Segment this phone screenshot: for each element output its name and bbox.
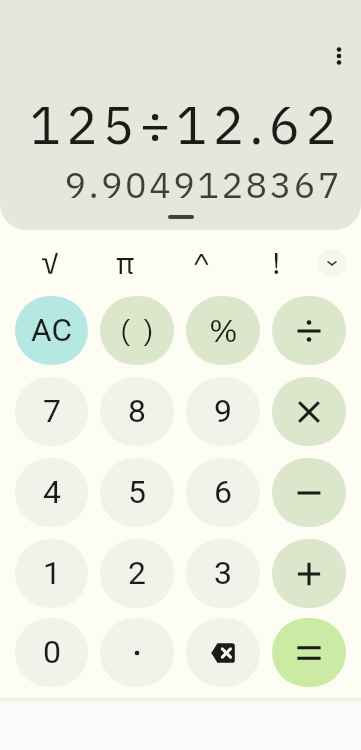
button[interactable]: Backspace: [186, 618, 260, 687]
staticText: ( ): [120, 312, 154, 350]
staticText: AC: [31, 312, 72, 349]
staticText: 9: [214, 392, 232, 430]
staticText: 5: [128, 473, 146, 511]
button[interactable]: 7: [15, 377, 88, 446]
button[interactable]: Multiply: [272, 377, 346, 446]
staticText: ^: [193, 245, 210, 281]
button[interactable]: Decimal point: [100, 618, 174, 687]
button[interactable]: !: [251, 237, 301, 288]
button[interactable]: Equals: [272, 618, 346, 687]
staticText: 1: [43, 554, 61, 592]
button[interactable]: 6: [186, 458, 260, 527]
button[interactable]: 0: [15, 618, 88, 687]
staticText: 0: [43, 633, 61, 671]
button[interactable]: 5: [100, 458, 174, 527]
button[interactable]: 8: [100, 377, 174, 446]
button[interactable]: Collapse keypad: [318, 249, 346, 277]
staticText: 3: [214, 554, 232, 592]
staticText: 9.9049128367: [64, 161, 342, 208]
button[interactable]: 9: [186, 377, 260, 446]
staticText: π: [116, 243, 135, 282]
staticText: 4: [43, 473, 61, 511]
button[interactable]: ( ): [100, 296, 174, 365]
staticText: 7: [43, 392, 61, 430]
staticText: 6: [214, 473, 232, 511]
button[interactable]: AC: [15, 296, 88, 365]
button[interactable]: 3: [186, 539, 260, 608]
button[interactable]: π: [100, 237, 150, 288]
button[interactable]: More options: [320, 37, 358, 75]
button[interactable]: 2: [100, 539, 174, 608]
button[interactable]: Add: [272, 539, 346, 608]
button[interactable]: 1: [15, 539, 88, 608]
button[interactable]: ^: [176, 237, 226, 288]
staticText: 8: [128, 392, 146, 430]
button[interactable]: Subtract: [272, 458, 346, 527]
staticText: 125÷12.62: [29, 91, 342, 159]
staticText: %: [209, 310, 238, 350]
button[interactable]: %: [186, 296, 260, 365]
button[interactable]: 4: [15, 458, 88, 527]
staticText: 2: [128, 554, 146, 592]
staticText: !: [272, 243, 281, 282]
button[interactable]: √: [25, 237, 75, 288]
button[interactable]: Divide: [272, 296, 346, 365]
staticText: √: [41, 243, 59, 282]
